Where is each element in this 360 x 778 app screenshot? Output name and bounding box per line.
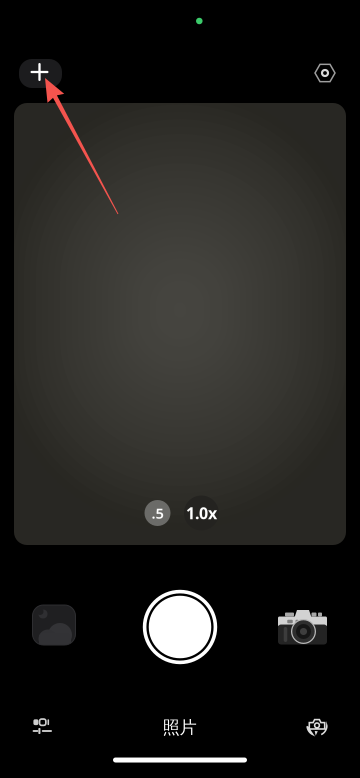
staticText: .5 — [151, 503, 163, 523]
button[interactable]: Photographic Styles — [308, 56, 342, 90]
button[interactable]: Photo Library — [32, 605, 75, 645]
button[interactable]: 照片 — [147, 710, 211, 744]
button[interactable]: 1x zoom — [184, 495, 219, 530]
button[interactable]: 0.5x zoom — [144, 500, 170, 526]
staticText: 照片 — [162, 717, 196, 738]
button[interactable]: Camera — [277, 609, 327, 643]
button[interactable]: Take Photo — [142, 589, 218, 665]
staticText: 1.0x — [186, 502, 217, 524]
button[interactable]: Add — [19, 59, 62, 88]
button[interactable]: Controls — [22, 708, 66, 744]
button[interactable]: Switch Camera — [295, 709, 339, 743]
